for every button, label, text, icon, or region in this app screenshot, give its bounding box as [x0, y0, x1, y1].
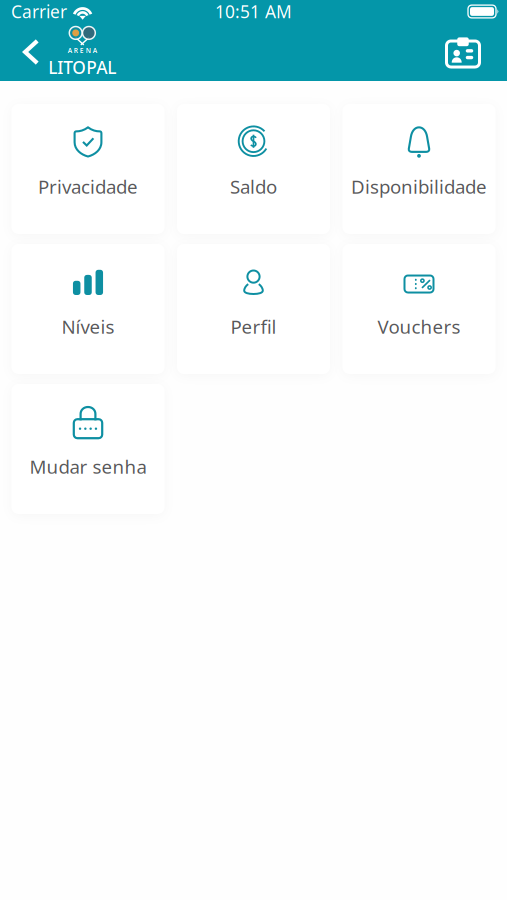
staticText: Vouchers: [377, 314, 460, 339]
button[interactable]: Carteirinha: [434, 28, 507, 75]
staticText: Privacidade: [38, 174, 138, 199]
staticText: Mudar senha: [29, 454, 146, 479]
button[interactable]: Voltar: [0, 31, 47, 73]
staticText: LITOPAL: [48, 56, 116, 79]
button[interactable]: Mudar senha: [11, 384, 164, 514]
staticText: Níveis: [61, 314, 114, 339]
button[interactable]: Perfil: [177, 244, 330, 374]
button[interactable]: Disponibilidade: [342, 104, 495, 234]
staticText: A R E N A: [68, 46, 97, 55]
staticText: Saldo: [230, 174, 277, 199]
staticText: Perfil: [230, 314, 276, 339]
staticText: Disponibilidade: [351, 174, 487, 199]
staticText: ESPORTES & BAR: [62, 79, 102, 86]
button[interactable]: Privacidade: [11, 104, 164, 234]
staticText: 10:51 AM: [215, 0, 292, 23]
button[interactable]: Níveis: [11, 244, 164, 374]
button[interactable]: Saldo: [177, 104, 330, 234]
button[interactable]: Vouchers: [342, 244, 495, 374]
staticText: Carrier: [11, 0, 67, 23]
